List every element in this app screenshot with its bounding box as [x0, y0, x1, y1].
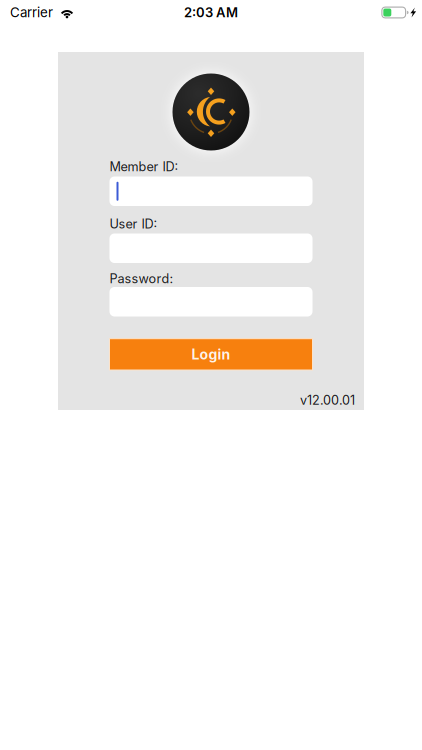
staticText: Carrier [10, 4, 53, 20]
button[interactable]: Login [109, 339, 312, 370]
staticText: Login [191, 346, 230, 363]
staticText: User ID: [109, 216, 157, 232]
staticText: Member ID: [109, 159, 178, 174]
staticText: v12.00.01 [300, 392, 355, 408]
staticText: 2:03 AM [184, 5, 238, 20]
staticText: Password: [109, 271, 173, 286]
